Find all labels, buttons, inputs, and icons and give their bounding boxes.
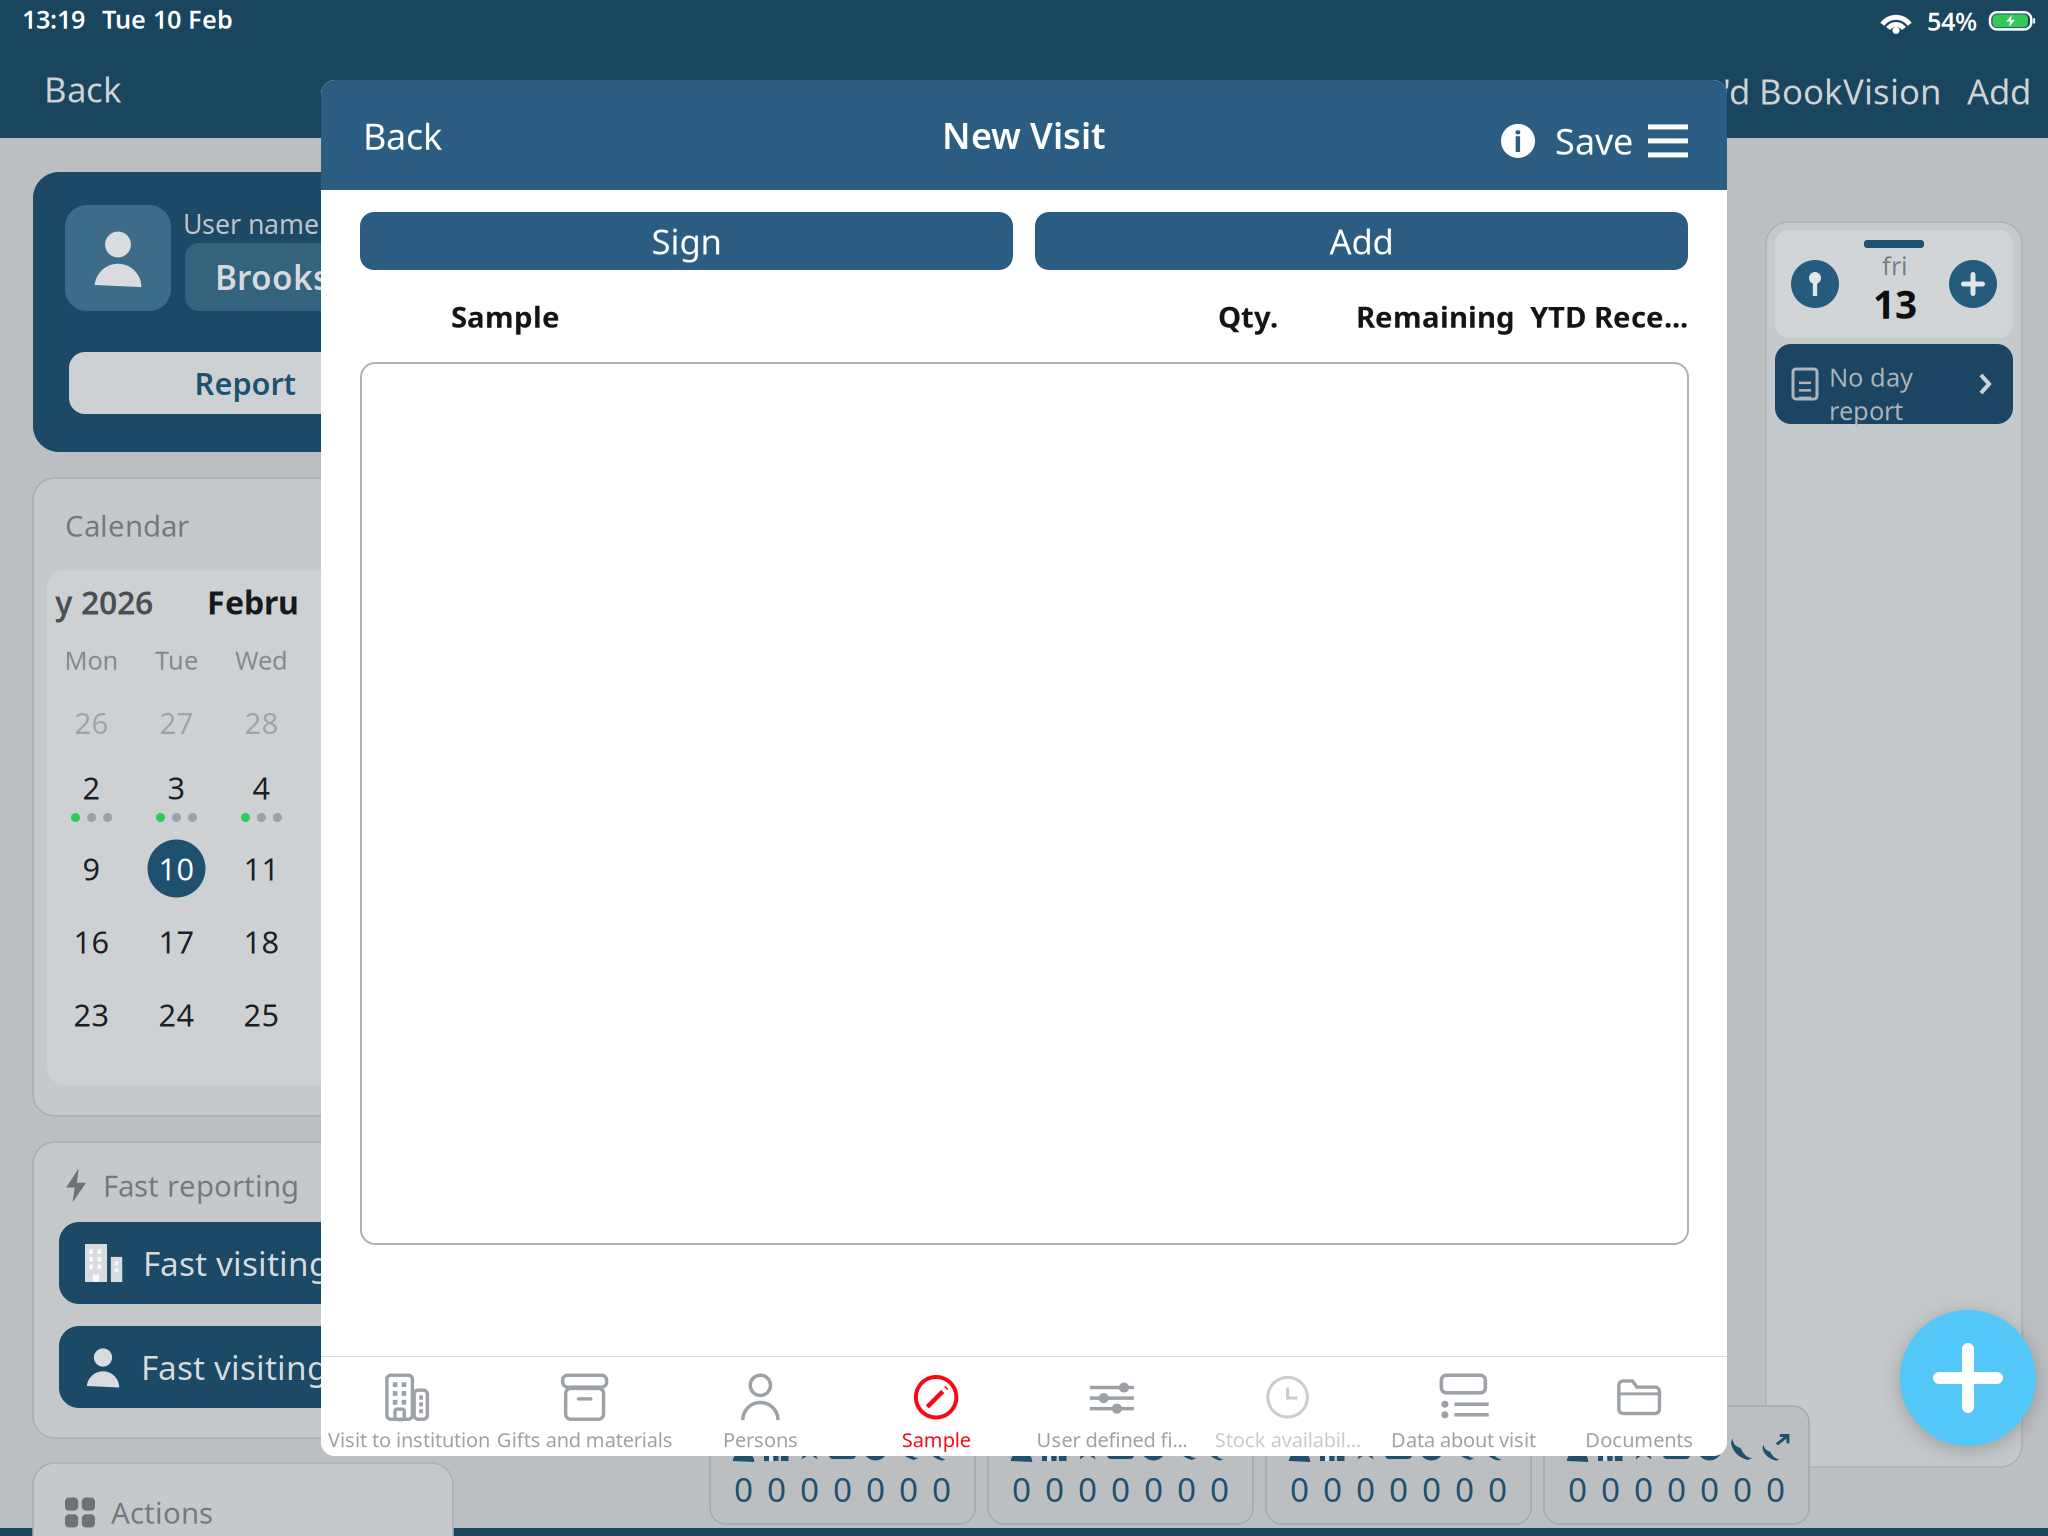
staticText: Remaining (1356, 297, 1515, 336)
staticText: 11 (243, 848, 279, 889)
button[interactable]: Gifts and materials (497, 1368, 673, 1460)
staticText: 0 (833, 1467, 852, 1511)
button[interactable]: Add (1900, 1310, 2036, 1446)
staticText: 0 (1177, 1467, 1196, 1511)
staticText: 24 (158, 994, 194, 1035)
staticText: 0 (1210, 1467, 1229, 1511)
button[interactable]: Stock availabil... (1200, 1368, 1376, 1460)
staticText: New Visit (942, 111, 1106, 159)
staticText: y 2026 (55, 581, 153, 623)
staticText: Wed (235, 643, 288, 677)
staticText: 0 (1422, 1467, 1441, 1511)
staticText: Mon (64, 643, 118, 677)
staticText: Fast visiting o (143, 1241, 359, 1285)
staticText: 0 (1455, 1467, 1474, 1511)
staticText: 0 (1144, 1467, 1163, 1511)
staticText: 0 (1568, 1467, 1587, 1511)
staticText: User name (183, 206, 319, 241)
button[interactable]: Pin (1791, 260, 1839, 308)
staticText: 0 (734, 1467, 753, 1511)
button[interactable]: Fast visiting o (59, 1326, 427, 1408)
staticText: 18 (243, 921, 279, 962)
staticText: 0 (1766, 1467, 1785, 1511)
staticText: 0 (1488, 1467, 1507, 1511)
button[interactable]: Data about visit (1375, 1368, 1551, 1460)
button[interactable]: Counters (710, 1406, 975, 1524)
staticText: Calendar (65, 506, 189, 545)
staticText: Tue 10 Feb (102, 2, 233, 36)
staticText: 0 (1733, 1467, 1752, 1511)
staticText: 0 (932, 1467, 951, 1511)
staticText: 0 (1111, 1467, 1130, 1511)
staticText: 9 (82, 848, 100, 889)
button[interactable]: Menu (1633, 124, 1688, 157)
button[interactable]: Save (1535, 117, 1633, 165)
staticText: 0 (1601, 1467, 1620, 1511)
staticText: Documents (1585, 1426, 1693, 1453)
staticText: Back (363, 112, 442, 160)
staticText: Stock availabil... (1215, 1426, 1361, 1453)
staticText: Qty. (1218, 297, 1278, 336)
button[interactable]: Report (69, 352, 421, 414)
staticText: Data about visit (1391, 1426, 1536, 1453)
button[interactable]: Back (44, 66, 122, 112)
staticText: Tue (155, 643, 198, 677)
staticText: 54% (1927, 4, 1977, 38)
staticText: 17 (158, 921, 194, 962)
button[interactable]: Persons (672, 1368, 848, 1460)
staticText: Brooks (215, 255, 329, 299)
staticText: Sample (902, 1426, 971, 1453)
staticText: 0 (1634, 1467, 1653, 1511)
staticText: 0 (1290, 1467, 1309, 1511)
staticText: 16 (73, 921, 109, 962)
button[interactable]: Add (1035, 212, 1688, 270)
staticText: 26 (74, 703, 108, 742)
button[interactable]: Sign (360, 212, 1013, 270)
button[interactable]: Counters (1544, 1406, 1809, 1524)
button[interactable]: Documents (1551, 1368, 1727, 1460)
button[interactable]: Visit to institution (321, 1368, 497, 1460)
staticText: Sign (651, 218, 721, 264)
button[interactable]: Counters (1266, 1406, 1531, 1524)
button[interactable]: User defined fi... (1024, 1368, 1200, 1460)
button[interactable]: Back (363, 112, 442, 160)
staticText: 28 (244, 703, 278, 742)
staticText: Back (44, 66, 122, 112)
staticText: User defined fi... (1036, 1426, 1187, 1453)
button[interactable]: Add (1967, 68, 2031, 114)
staticText: 27 (159, 703, 193, 742)
staticText: Actions (111, 1493, 213, 1532)
button[interactable]: Info (1501, 124, 1535, 158)
button[interactable]: No day report (1775, 344, 2013, 424)
staticText: Save (1555, 117, 1633, 165)
staticText: 10 (158, 848, 194, 889)
button[interactable]: Counters (988, 1406, 1253, 1524)
staticText: Add (1967, 68, 2031, 114)
staticText: 25 (243, 994, 279, 1035)
button[interactable]: 10 (147, 839, 205, 897)
staticText: 23 (73, 994, 109, 1035)
staticText: 0 (1078, 1467, 1097, 1511)
staticText: Fast visiting o (141, 1345, 357, 1389)
staticText: Gifts and materials (497, 1426, 673, 1453)
staticText: Report (194, 363, 295, 403)
button[interactable]: Add (1949, 260, 1997, 308)
staticText: 2 (82, 767, 100, 808)
staticText: Add (1329, 218, 1393, 264)
staticText: fri (1882, 248, 1908, 282)
staticText: 13:19 (22, 2, 85, 36)
button[interactable]: Sample (848, 1368, 1024, 1460)
staticText: No day report (1829, 360, 1913, 427)
staticText: 3 (167, 767, 185, 808)
staticText: 0 (1389, 1467, 1408, 1511)
staticText: Febru (207, 581, 299, 623)
staticText: 0 (899, 1467, 918, 1511)
staticText: 0 (1045, 1467, 1064, 1511)
staticText: 0 (1356, 1467, 1375, 1511)
staticText: 0 (1667, 1467, 1686, 1511)
button[interactable]: Fast visiting o (59, 1222, 427, 1304)
staticText: Fast reporting (103, 1166, 299, 1205)
staticText: YTD Rece... (1530, 297, 1688, 336)
staticText: 0 (866, 1467, 885, 1511)
staticText: 0 (767, 1467, 786, 1511)
